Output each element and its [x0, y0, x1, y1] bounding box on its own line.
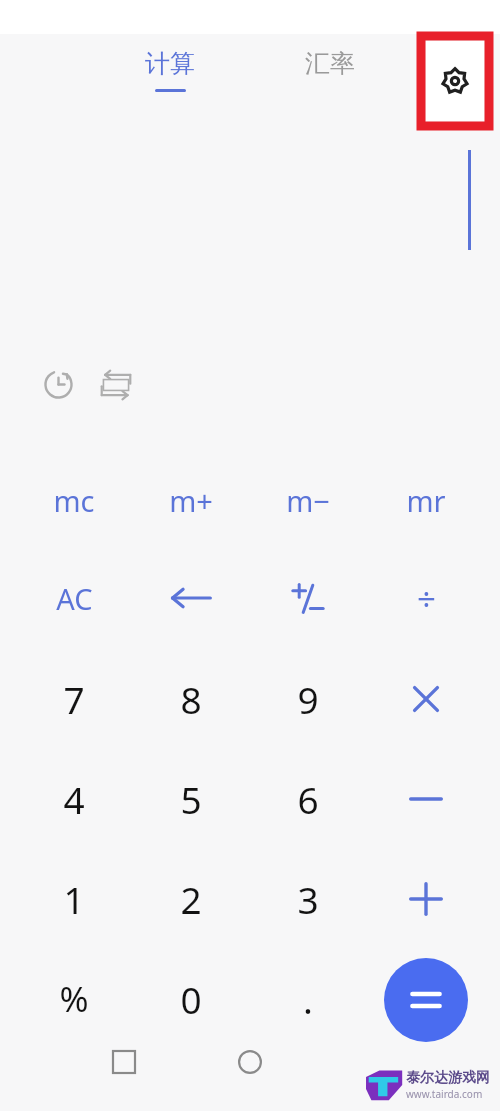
staticText: .: [303, 974, 313, 1024]
button[interactable]: Subtract: [380, 753, 472, 845]
button[interactable]: Add: [380, 853, 472, 945]
staticText: AC: [56, 579, 93, 618]
button[interactable]: Plus minus: [262, 552, 354, 644]
staticText: ÷: [417, 576, 436, 621]
button[interactable]: 计算: [128, 34, 212, 126]
button[interactable]: Equals: [384, 958, 468, 1042]
button[interactable]: 6: [262, 753, 354, 845]
button[interactable]: Multiply: [380, 653, 472, 745]
staticText: m−: [286, 481, 330, 520]
button[interactable]: 汇率: [288, 34, 372, 126]
staticText: 1: [63, 874, 85, 924]
button[interactable]: 2: [145, 853, 237, 945]
button[interactable]: 8: [145, 653, 237, 745]
button[interactable]: 4: [28, 753, 120, 845]
button[interactable]: Recents: [101, 1039, 147, 1085]
staticText: 5: [180, 774, 202, 824]
staticText: 6: [297, 774, 319, 824]
button[interactable]: %: [28, 953, 120, 1045]
button[interactable]: 7: [28, 653, 120, 745]
staticText: mc: [53, 481, 95, 520]
button[interactable]: Mode: [97, 366, 135, 404]
staticText: www.tairda.com: [406, 1087, 483, 1101]
button[interactable]: Settings: [421, 36, 489, 126]
button[interactable]: 1: [28, 853, 120, 945]
button[interactable]: ÷: [380, 552, 472, 644]
staticText: 3: [297, 874, 319, 924]
staticText: 泰尔达游戏网: [406, 1069, 490, 1087]
button[interactable]: m+: [145, 454, 237, 546]
button[interactable]: 5: [145, 753, 237, 845]
staticText: 计算: [145, 48, 195, 79]
staticText: %: [59, 975, 89, 1023]
button[interactable]: mr: [380, 454, 472, 546]
button[interactable]: mc: [28, 454, 120, 546]
button[interactable]: .: [262, 953, 354, 1045]
button[interactable]: 3: [262, 853, 354, 945]
button[interactable]: 0: [145, 953, 237, 1045]
staticText: 汇率: [305, 48, 355, 79]
staticText: mr: [406, 481, 446, 520]
button[interactable]: AC: [28, 552, 120, 644]
staticText: 8: [180, 674, 202, 724]
button[interactable]: Backspace: [145, 552, 237, 644]
staticText: 7: [63, 674, 85, 724]
button[interactable]: Home: [227, 1039, 273, 1085]
staticText: 0: [180, 974, 202, 1024]
button[interactable]: 9: [262, 653, 354, 745]
button[interactable]: m−: [262, 454, 354, 546]
staticText: 9: [297, 674, 319, 724]
button[interactable]: History: [40, 366, 76, 402]
staticText: m+: [169, 481, 213, 520]
staticText: 4: [63, 774, 85, 824]
staticText: 2: [180, 874, 202, 924]
